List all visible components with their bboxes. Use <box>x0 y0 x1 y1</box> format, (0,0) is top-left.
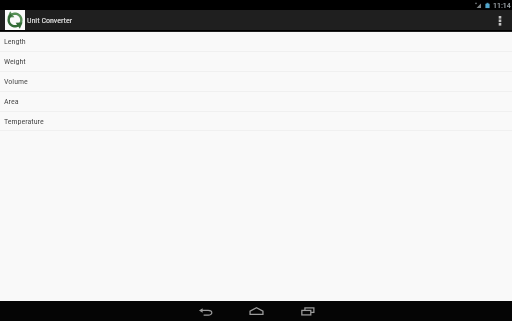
button[interactable]: Home <box>231 301 282 321</box>
staticText: Volume <box>4 77 28 86</box>
staticText: Unit Converter <box>27 16 73 25</box>
button[interactable]: More options <box>488 10 512 30</box>
button[interactable]: Back <box>180 301 231 321</box>
staticText: Length <box>4 37 26 46</box>
button[interactable]: Recent apps <box>282 301 333 321</box>
button[interactable]: Volume <box>0 72 512 91</box>
button[interactable]: Area <box>0 92 512 111</box>
button[interactable]: Length <box>0 32 512 51</box>
button[interactable]: Temperature <box>0 112 512 130</box>
staticText: Area <box>4 97 19 106</box>
staticText: Weight <box>4 57 26 66</box>
button[interactable]: Weight <box>0 52 512 71</box>
staticText: 11:14 <box>493 1 511 10</box>
staticText: Temperature <box>4 117 44 126</box>
